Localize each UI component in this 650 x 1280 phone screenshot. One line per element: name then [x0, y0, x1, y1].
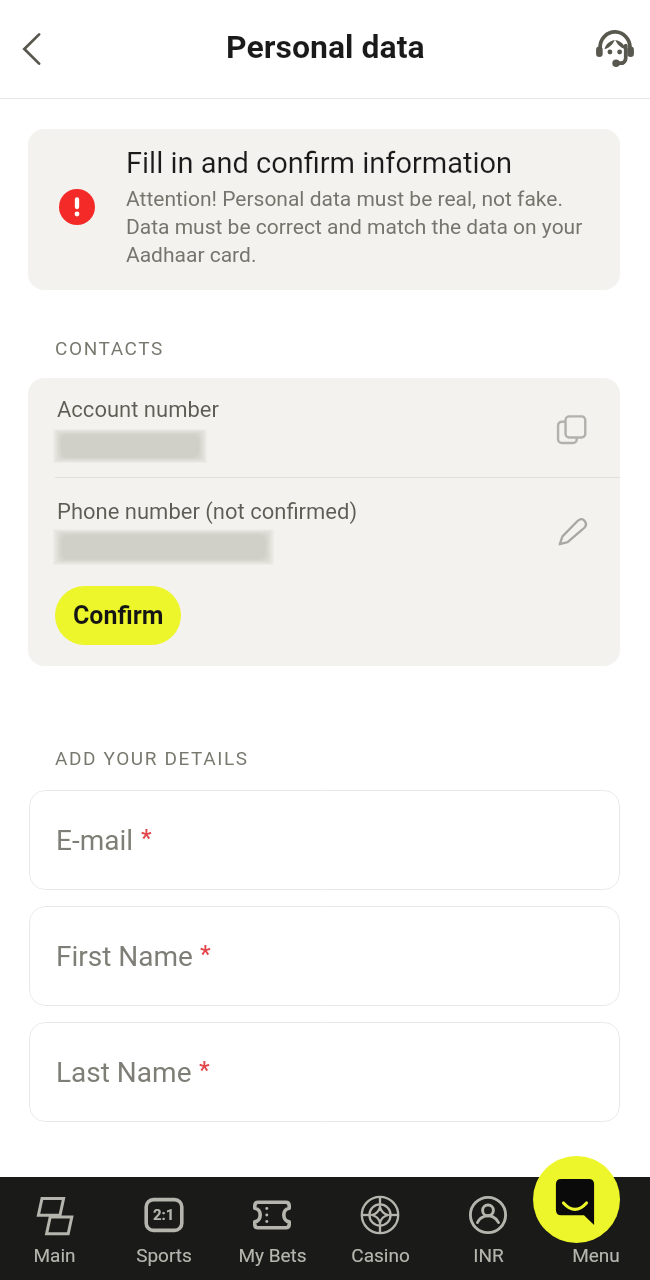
- staticText: Account number: [57, 397, 219, 423]
- button[interactable]: Chat: [533, 1156, 620, 1243]
- button[interactable]: Support: [587, 21, 643, 77]
- staticText: Last Name: [56, 1056, 192, 1089]
- staticText: First Name: [56, 940, 193, 973]
- staticText: INR: [473, 1244, 504, 1266]
- staticText: Main: [33, 1244, 76, 1266]
- button[interactable]: Main: [0, 1177, 109, 1280]
- staticText: Confirm: [73, 601, 164, 630]
- staticText: Menu: [572, 1244, 620, 1266]
- button[interactable]: Menu: [542, 1177, 650, 1280]
- staticText: *: [199, 1056, 210, 1084]
- button[interactable]: Last Name: [29, 1022, 620, 1122]
- button[interactable]: My Bets: [218, 1177, 326, 1280]
- button[interactable]: Back: [3, 19, 63, 79]
- staticText: Personal data: [226, 28, 425, 66]
- staticText: Phone number (not confirmed): [57, 499, 358, 525]
- staticText: *: [141, 824, 152, 852]
- button[interactable]: INR: [434, 1177, 542, 1280]
- button[interactable]: Edit: [546, 506, 598, 558]
- button[interactable]: 2:1: [109, 1177, 218, 1280]
- button[interactable]: Copy: [546, 404, 598, 456]
- button[interactable]: Confirm: [55, 586, 181, 645]
- button[interactable]: E-mail: [29, 790, 620, 890]
- staticText: CONTACTS: [55, 337, 164, 359]
- button[interactable]: Casino: [326, 1177, 434, 1280]
- staticText: Fill in and confirm information: [126, 146, 513, 180]
- staticText: E-mail: [56, 824, 134, 857]
- staticText: ADD YOUR DETAILS: [55, 747, 249, 769]
- staticText: My Bets: [238, 1244, 307, 1266]
- button[interactable]: First Name: [29, 906, 620, 1006]
- staticText: Attention! Personal data must be real, n…: [126, 187, 592, 267]
- staticText: 2:1: [153, 1206, 175, 1224]
- staticText: *: [200, 940, 211, 968]
- staticText: Sports: [136, 1244, 192, 1266]
- staticText: Casino: [351, 1244, 410, 1266]
